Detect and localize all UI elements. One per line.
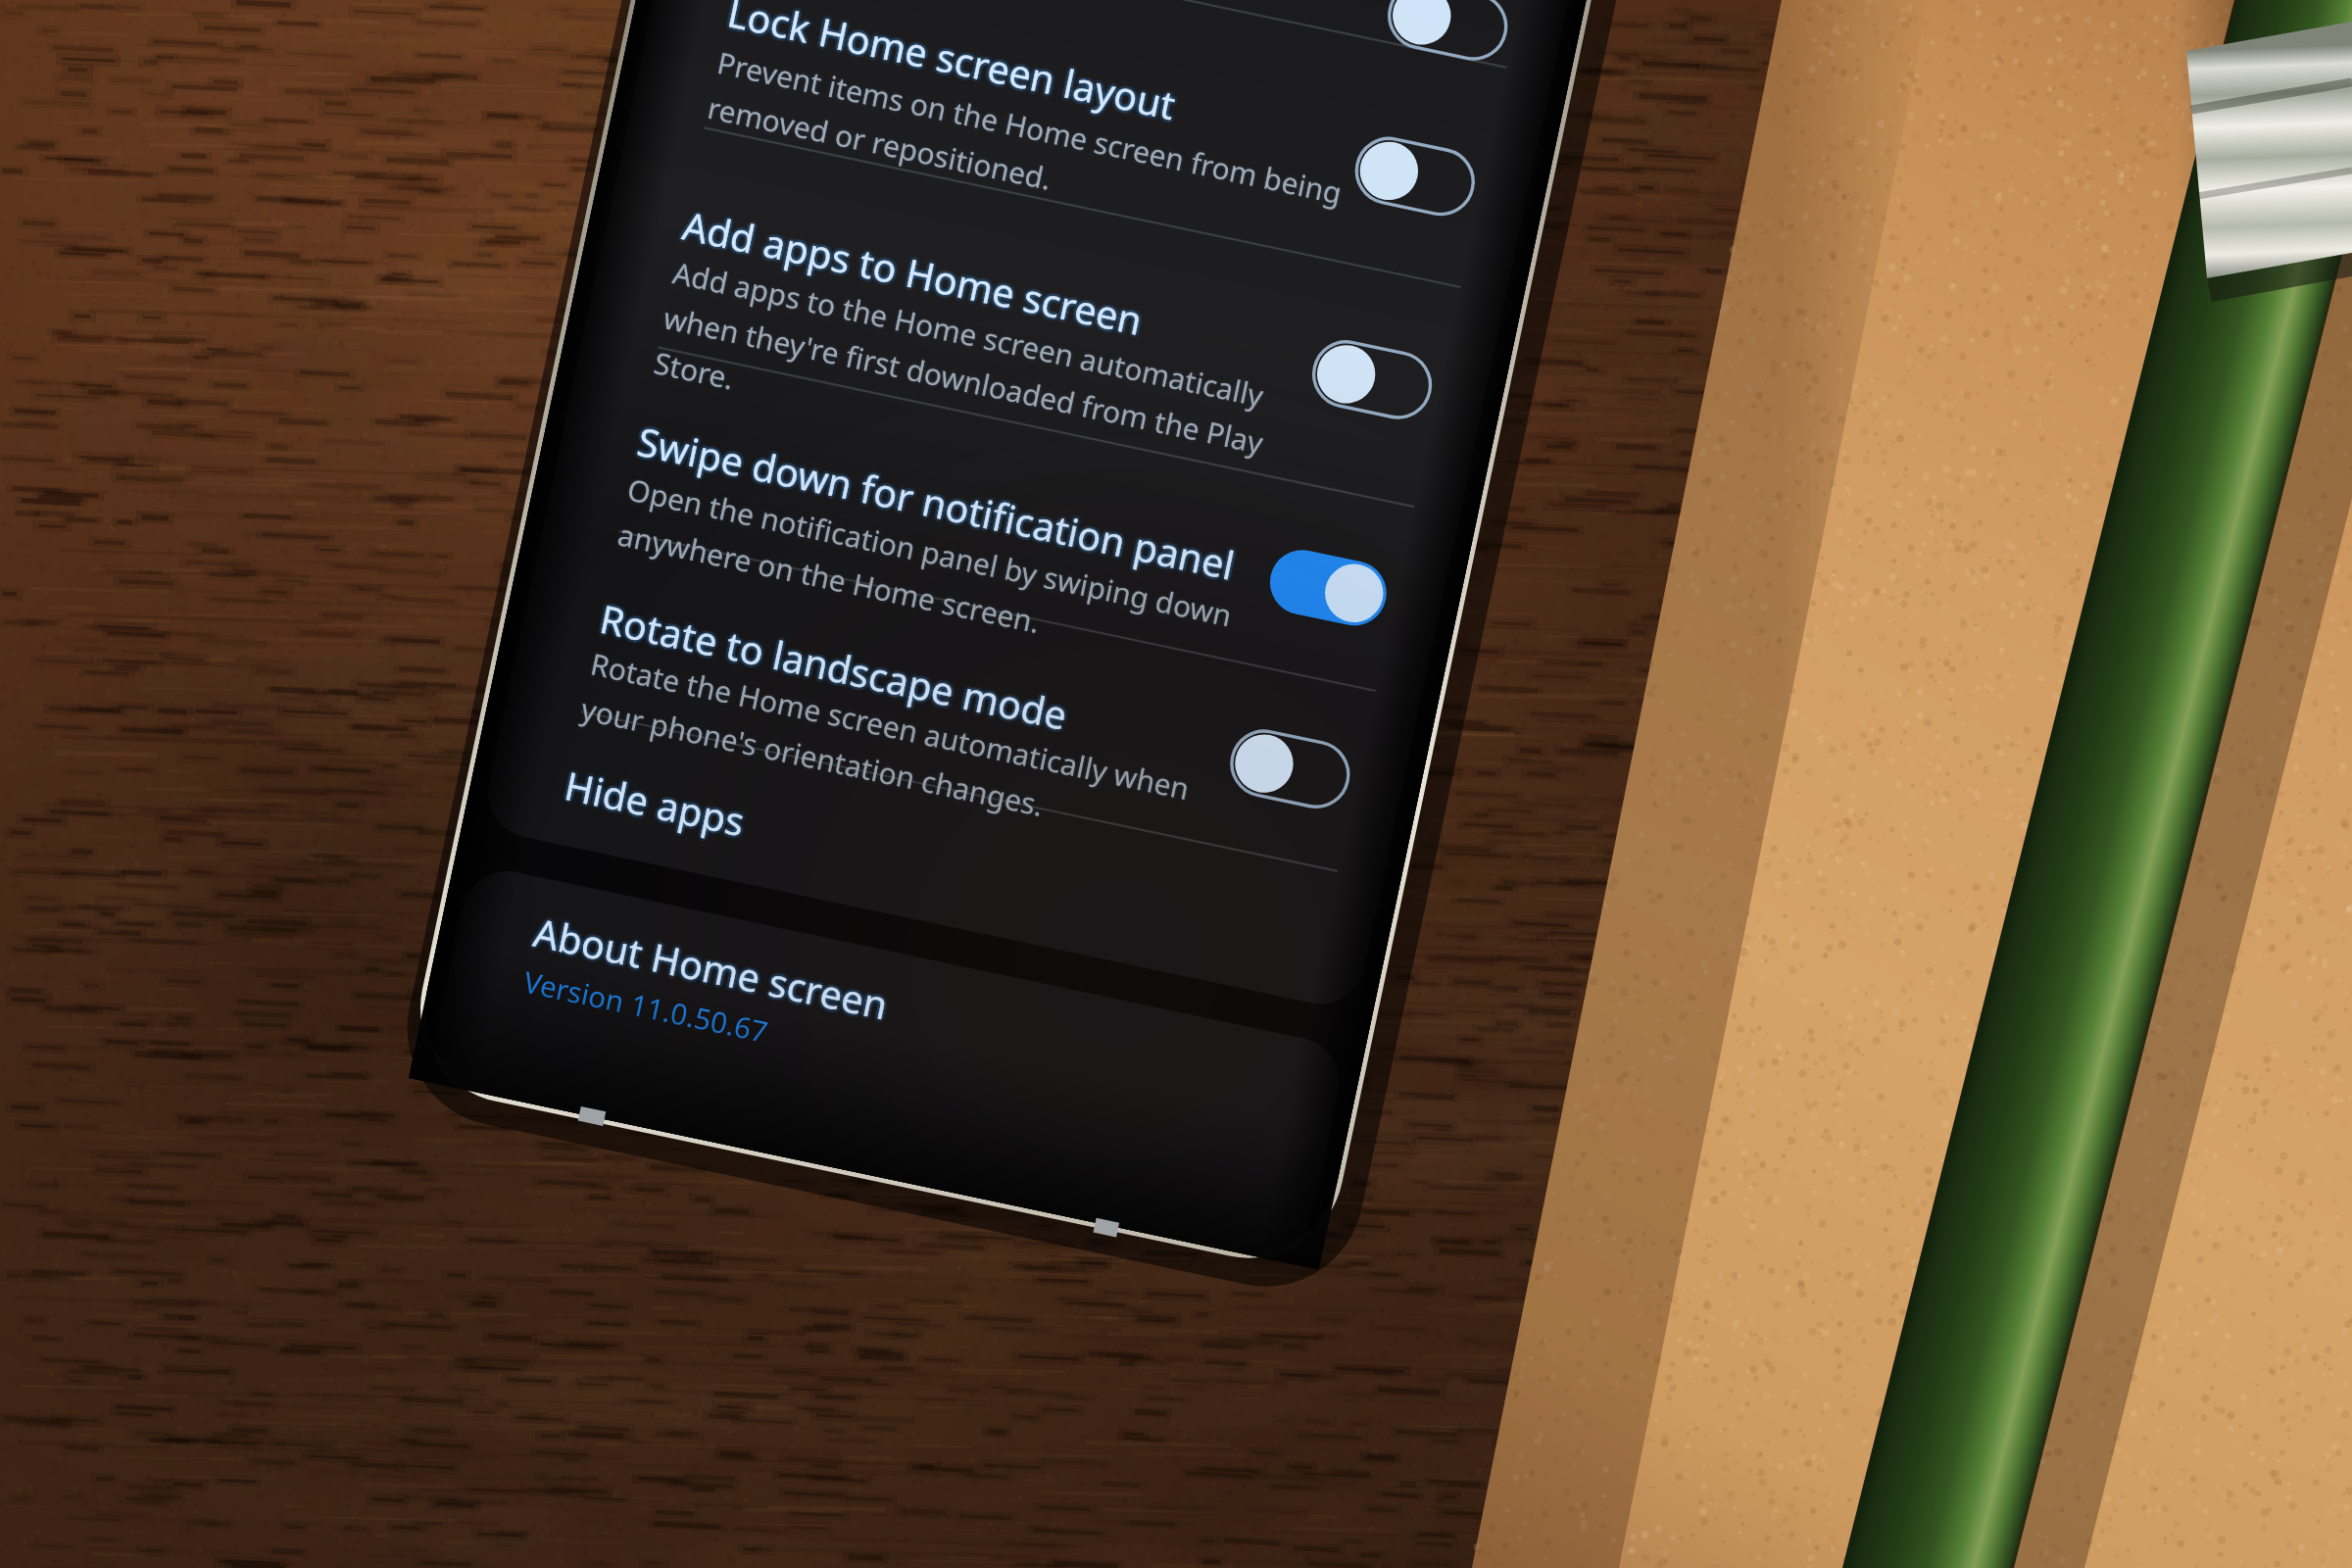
button[interactable]: Swipe down for notification panel switch… [1304, 341, 1442, 429]
button[interactable]: Hide apps [479, 669, 1342, 1012]
button[interactable]: Lock Home screen layout switch, off [1383, 0, 1520, 73]
button[interactable]: Rotate to landscape mode [513, 477, 1375, 854]
button[interactable]: Add apps to Home screen switch, off [1349, 139, 1487, 227]
button[interactable]: Rotate to landscape mode switch, on [1260, 550, 1397, 638]
button[interactable]: Hide apps switch, off [1215, 729, 1352, 817]
button[interactable]: Swipe down for notification panel [554, 267, 1416, 662]
button[interactable]: Add apps to Home screen [598, 46, 1460, 451]
button[interactable]: About Home screen [426, 863, 1289, 1266]
button[interactable]: Lock Home screen layout [644, 0, 1506, 231]
